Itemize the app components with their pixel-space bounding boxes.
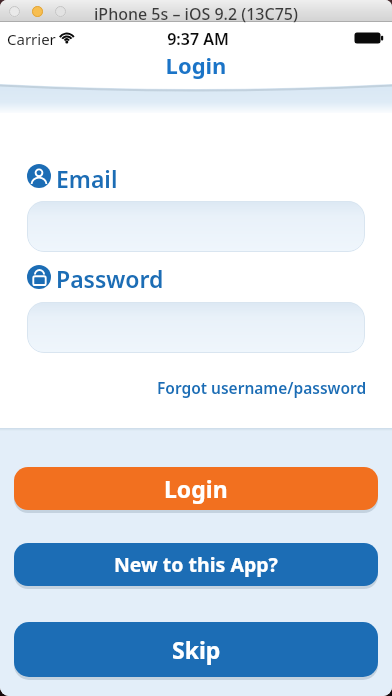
- button[interactable]: [27, 302, 365, 353]
- button[interactable]: Login: [14, 467, 378, 510]
- button[interactable]: Skip: [14, 622, 378, 677]
- staticText: Skip: [172, 634, 221, 665]
- button[interactable]: Forgot username/password: [157, 377, 367, 398]
- staticText: New to this App?: [114, 551, 278, 578]
- staticText: Carrier: [7, 29, 56, 49]
- button[interactable]: [27, 201, 365, 252]
- staticText: Login: [0, 50, 392, 80]
- staticText: 9:37 AM: [2, 28, 392, 50]
- staticText: iPhone 5s – iOS 9.2 (13C75): [0, 3, 392, 25]
- button[interactable]: New to this App?: [14, 543, 378, 586]
- staticText: Login: [164, 473, 228, 504]
- staticText: Email: [56, 163, 118, 194]
- staticText: Password: [56, 263, 164, 294]
